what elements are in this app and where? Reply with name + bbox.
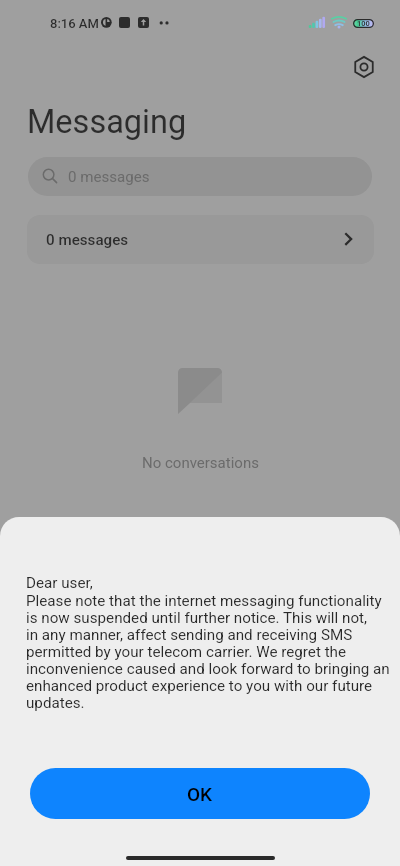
staticText: 0 messages <box>46 231 129 249</box>
button[interactable]: 0 messages <box>27 215 374 264</box>
staticText: 0 messages <box>68 168 150 186</box>
button[interactable]: OK <box>30 768 370 819</box>
button[interactable]: 0 messages <box>28 157 372 196</box>
button[interactable]: Settings <box>348 51 380 83</box>
staticText: OK <box>187 783 213 805</box>
staticText: Messaging <box>27 103 187 141</box>
staticText: No conversations <box>142 454 259 472</box>
staticText: 8:16 AM <box>50 16 99 31</box>
staticText: Dear user, Please note that the internet… <box>26 574 390 711</box>
staticText: 100 <box>357 19 370 28</box>
